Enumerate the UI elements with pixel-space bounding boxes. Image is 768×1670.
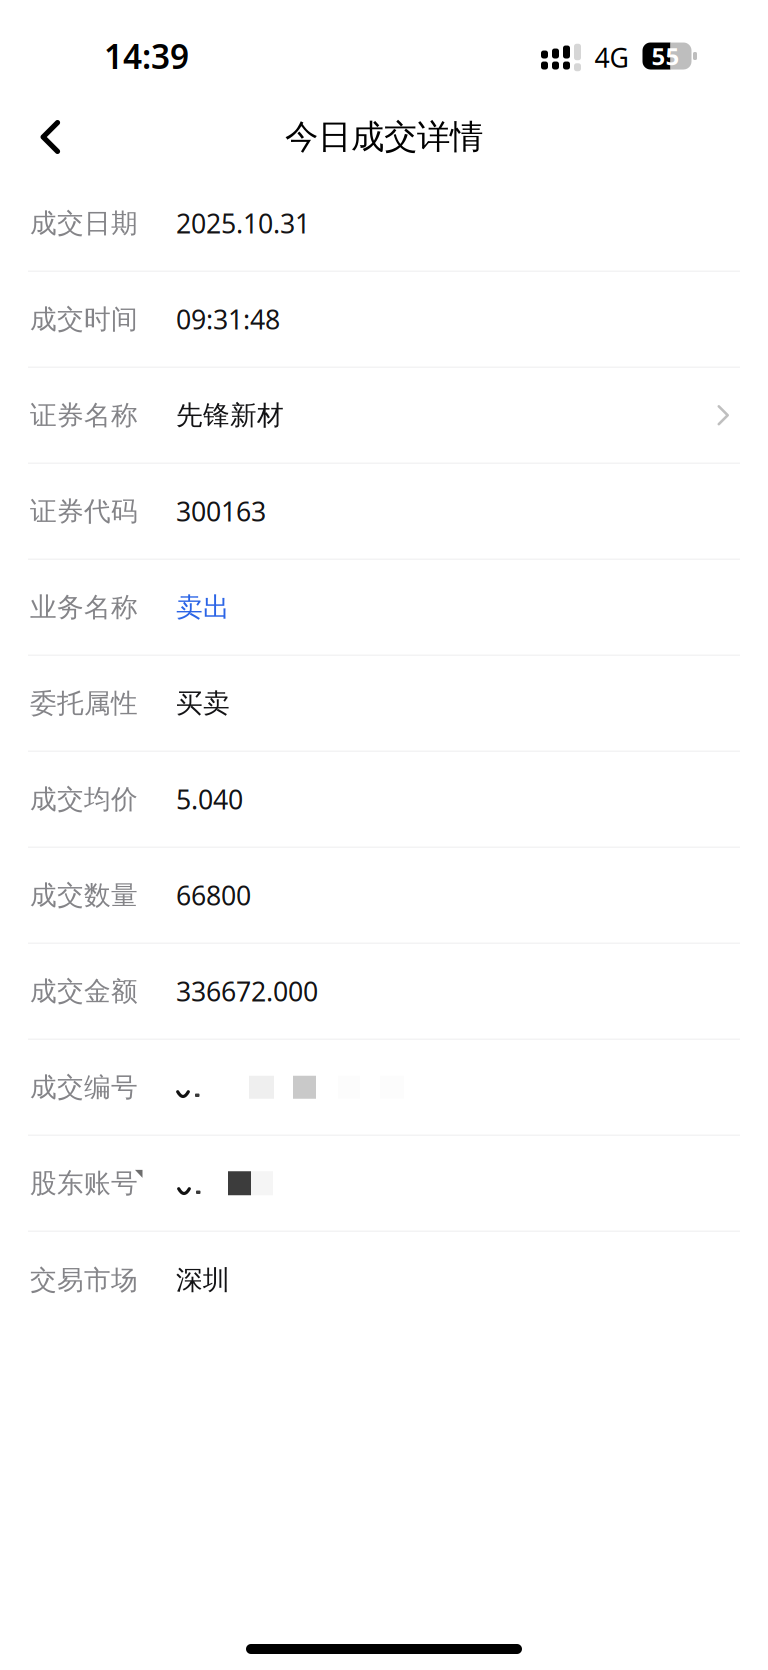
- staticText: 55: [651, 40, 679, 72]
- staticText: 委托属性: [30, 687, 138, 720]
- staticText: 成交编号: [30, 1071, 138, 1104]
- staticText: 深圳: [176, 1264, 230, 1296]
- staticText: 300163: [176, 493, 266, 529]
- staticText: 证券代码: [30, 495, 138, 528]
- staticText: 交易市场: [30, 1264, 138, 1296]
- staticText: 成交时间: [30, 303, 138, 336]
- staticText: 成交数量: [30, 879, 138, 912]
- staticText: 成交日期: [30, 207, 138, 240]
- staticText: 业务名称: [30, 591, 138, 624]
- staticText: 今日成交详情: [285, 116, 483, 157]
- staticText: 66800: [176, 877, 251, 913]
- staticText: 成交金额: [30, 975, 138, 1008]
- staticText: 5.040: [176, 781, 243, 817]
- staticText: 成交均价: [30, 783, 138, 816]
- staticText: 09:31:48: [176, 301, 280, 337]
- staticText: 卖出: [176, 591, 230, 624]
- staticText: 证券名称: [30, 399, 138, 432]
- staticText: 先锋新材: [176, 399, 284, 432]
- button[interactable]: 返回: [0, 89, 91, 179]
- staticText: 336672.000: [176, 973, 318, 1009]
- staticText: 股东账号: [30, 1167, 138, 1200]
- staticText: 2025.10.31: [176, 205, 310, 241]
- staticText: 14:39: [104, 34, 189, 78]
- button[interactable]: 证券名称: [0, 368, 768, 464]
- staticText: 4G: [594, 40, 628, 75]
- staticText: 买卖: [176, 687, 230, 720]
